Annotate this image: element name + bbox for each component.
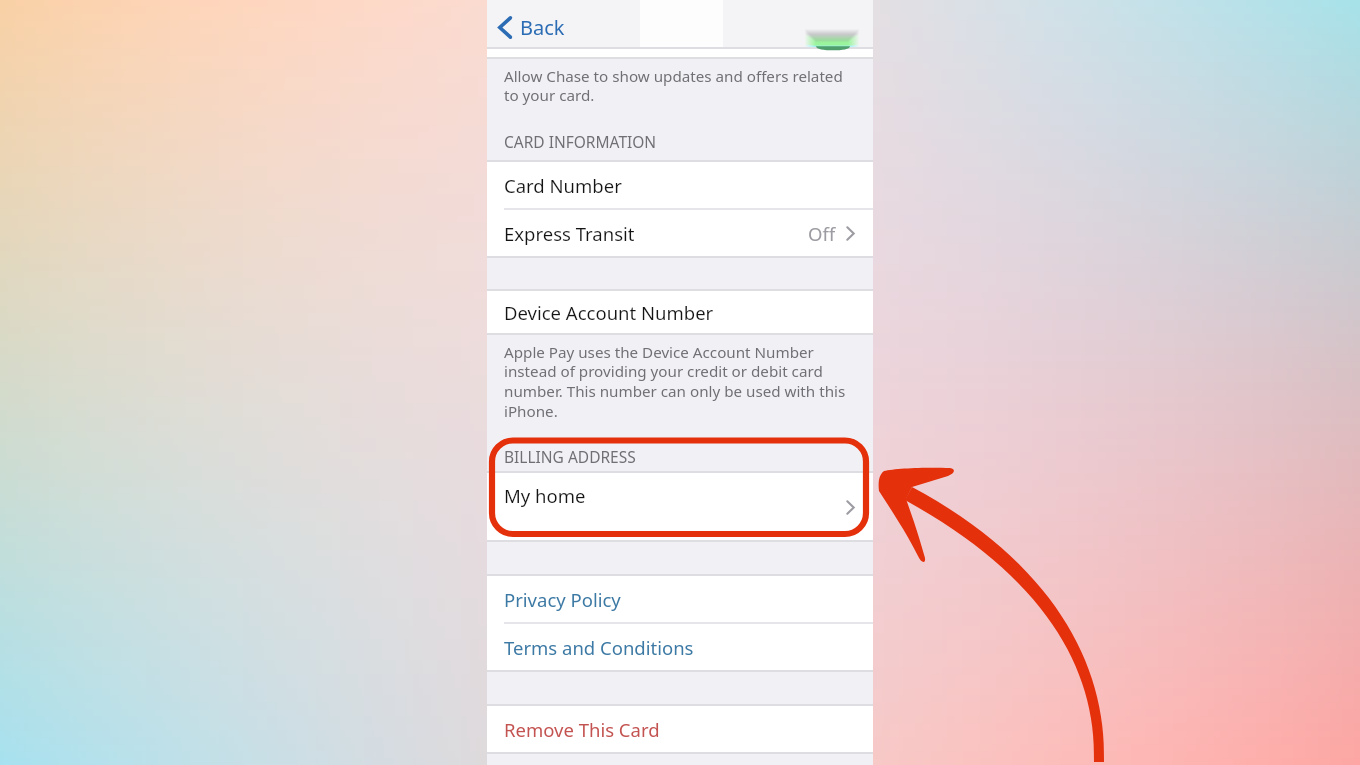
staticText: CARD INFORMATION — [504, 131, 657, 152]
staticText: Express Transit — [504, 221, 635, 246]
button[interactable]: Device Account Number — [487, 291, 873, 334]
button[interactable]: Card Number — [487, 162, 873, 209]
staticText: Allow Chase to show updates and offers r… — [504, 66, 843, 106]
button[interactable]: Terms and Conditions — [487, 624, 873, 671]
button[interactable]: Privacy Policy — [487, 576, 873, 623]
button[interactable]: Express Transit — [487, 210, 873, 257]
staticText: My home — [504, 483, 586, 508]
staticText: Device Account Number — [504, 300, 714, 325]
staticText: Card Number — [504, 173, 622, 198]
staticText: Off — [808, 221, 836, 246]
button[interactable]: Remove This Card — [487, 706, 873, 753]
staticText: Apple Pay uses the Device Account Number… — [504, 342, 846, 422]
staticText: BILLING ADDRESS — [504, 446, 636, 467]
staticText: Remove This Card — [504, 717, 660, 742]
button[interactable]: My home — [487, 473, 873, 541]
staticText: Back — [520, 14, 565, 41]
button[interactable]: Back — [494, 12, 569, 43]
staticText: Terms and Conditions — [504, 635, 694, 660]
staticText: Privacy Policy — [504, 587, 621, 612]
